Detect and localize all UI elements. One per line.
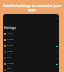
staticText: Saver — [7, 53, 12, 55]
staticText: All apps — [7, 35, 14, 37]
staticText: Detailed settings to customize your apps — [2, 3, 62, 12]
staticText: Bright — [7, 47, 13, 49]
staticText: Settings — [4, 26, 16, 30]
staticText: 32 GB — [7, 59, 12, 61]
button[interactable]: Security — [3, 67, 59, 72]
button[interactable]: Battery — [3, 49, 59, 55]
staticText: Power — [7, 50, 14, 53]
button[interactable]: Notifications — [3, 31, 59, 37]
staticText: Lock — [7, 67, 12, 70]
button[interactable]: Storage — [3, 55, 59, 61]
staticText: Sound — [7, 38, 14, 41]
staticText: Privacy — [7, 62, 14, 65]
button[interactable]: Display — [3, 43, 59, 49]
staticText: Perms — [7, 65, 13, 67]
staticText: Alerts — [7, 32, 13, 35]
staticText: Screen — [7, 70, 13, 72]
staticText: Files — [7, 56, 12, 59]
button[interactable]: Privacy — [3, 61, 59, 67]
staticText: Screen — [7, 44, 14, 47]
staticText: Volume — [7, 41, 14, 43]
button[interactable]: Sound — [3, 37, 59, 43]
